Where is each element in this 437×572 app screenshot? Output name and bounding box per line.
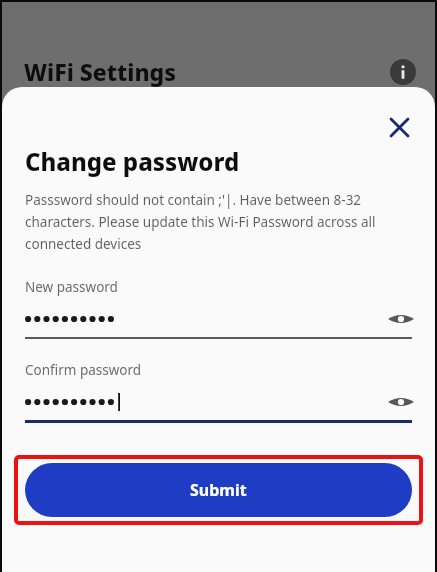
staticText: Confirm password: [25, 361, 142, 379]
staticText: Change password: [25, 145, 240, 178]
staticText: New password: [25, 278, 118, 296]
staticText: WiFi Settings: [24, 56, 176, 87]
button[interactable]: Submit: [25, 463, 412, 517]
button[interactable]: Information: [387, 56, 419, 88]
staticText: Submit: [190, 479, 247, 501]
staticText: Passsword should not contain ;'|. Have b…: [25, 191, 419, 253]
button[interactable]: Close: [382, 110, 416, 144]
